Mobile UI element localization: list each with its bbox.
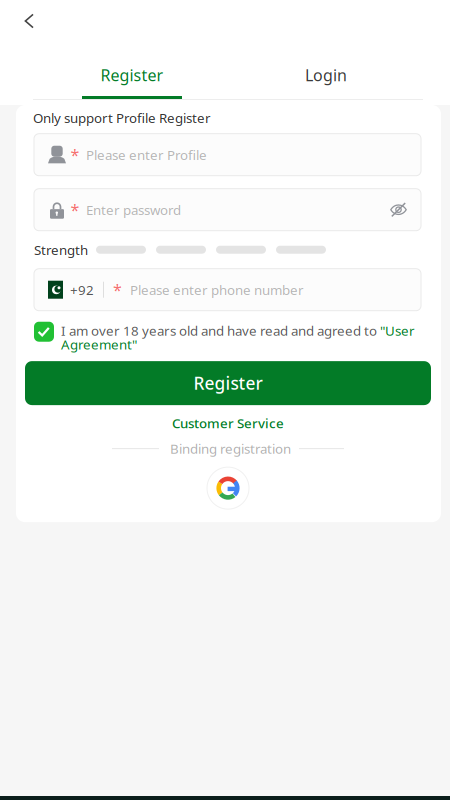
staticText: Binding registration (170, 440, 291, 457)
staticText: Please enter phone number (130, 281, 304, 299)
button[interactable]: Login (229, 42, 423, 99)
staticText: Login (305, 64, 347, 86)
staticText: Please enter Profile (86, 146, 207, 164)
button[interactable]: I am over 18 years old and have read and… (34, 322, 421, 353)
staticText: Strength (34, 241, 88, 259)
staticText: I am over 18 years old and have read and… (61, 322, 415, 353)
staticText: Customer Service (172, 414, 284, 432)
staticText: * (70, 144, 79, 165)
button[interactable]: Sign in with Google (25, 467, 431, 509)
button[interactable]: Customer Service (25, 415, 431, 431)
staticText: Enter password (86, 201, 181, 219)
staticText: * (70, 199, 79, 220)
staticText: +92 (70, 281, 94, 299)
staticText: Register (100, 64, 163, 86)
button[interactable]: Back (0, 0, 58, 42)
staticText: * (113, 279, 122, 300)
staticText: Only support Profile Register (33, 109, 211, 127)
button[interactable]: Register (35, 42, 229, 99)
staticText: Register (193, 372, 262, 395)
button[interactable]: Register (25, 361, 431, 405)
